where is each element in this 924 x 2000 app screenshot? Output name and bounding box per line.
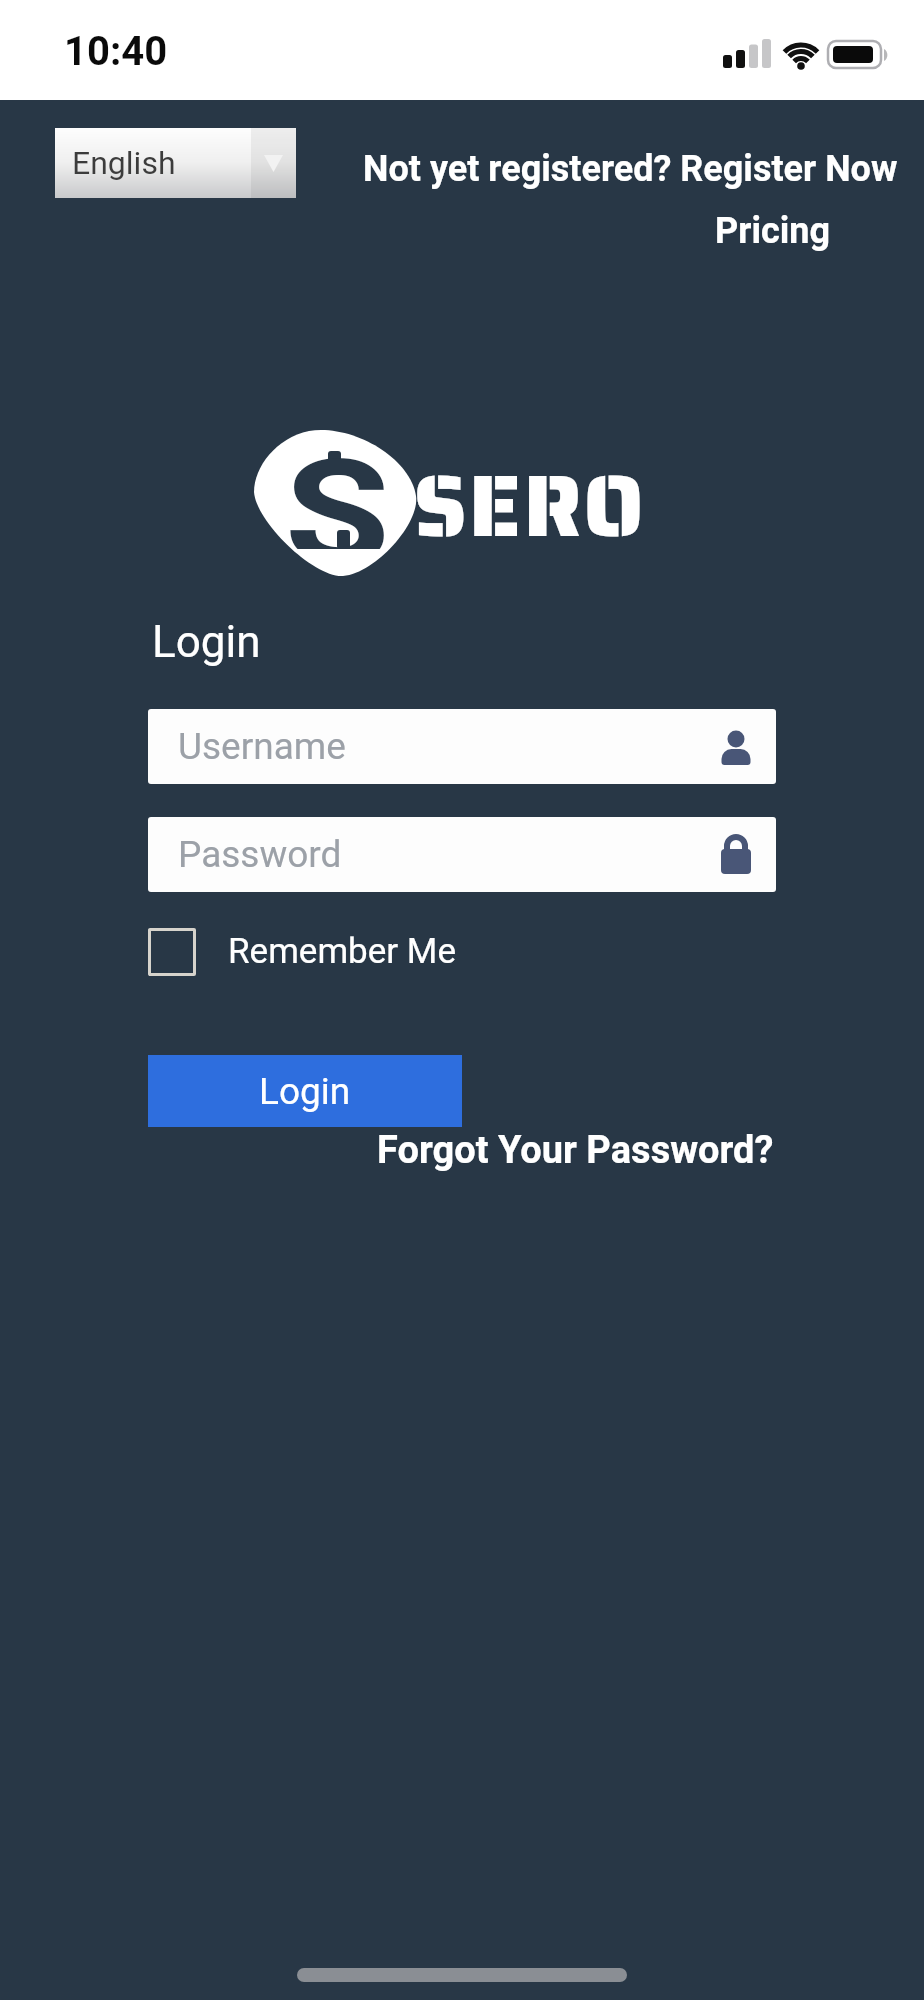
staticText: SERO xyxy=(414,438,646,573)
staticText: Login xyxy=(259,1070,351,1113)
button[interactable]: Password xyxy=(148,817,776,892)
staticText: Username xyxy=(178,725,346,768)
staticText: S xyxy=(284,429,390,549)
button[interactable]: Not yet registered? Register Now xyxy=(363,148,898,190)
button[interactable] xyxy=(148,928,196,976)
button[interactable]: English xyxy=(55,128,296,198)
staticText: English xyxy=(72,144,176,182)
staticText: 10:40 xyxy=(64,28,168,75)
button[interactable]: Login xyxy=(148,1055,462,1127)
button[interactable]: Forgot Your Password? xyxy=(377,1128,774,1173)
staticText: Remember Me xyxy=(228,931,456,972)
staticText: Login xyxy=(152,616,261,668)
button[interactable]: Username xyxy=(148,709,776,784)
staticText: Password xyxy=(178,833,342,876)
button[interactable]: Pricing xyxy=(715,210,830,252)
